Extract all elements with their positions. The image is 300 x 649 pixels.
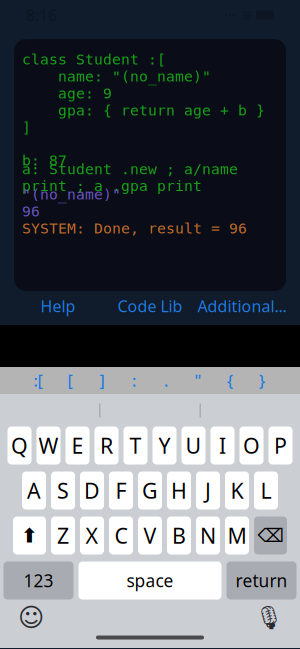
staticText: Q [11,431,28,460]
staticText: ⬆ [21,524,38,547]
button[interactable]: Additional... [196,292,288,320]
staticText: G [142,476,158,505]
staticText: ⌫ [257,525,283,546]
button[interactable]: Code Lib [104,292,196,320]
button[interactable]: O [239,426,263,464]
staticText: [ [67,370,72,391]
staticText: B [172,521,186,550]
button[interactable]: space [78,561,221,599]
staticText: R [100,431,113,460]
button[interactable]: H [167,471,191,509]
button[interactable]: { [214,367,246,393]
staticText: 8:16 [26,4,57,26]
staticText: N [200,521,216,550]
button[interactable]: :[ [22,367,54,393]
button[interactable]: A [22,471,46,509]
button[interactable]: R [94,426,118,464]
button[interactable]: N [196,516,220,554]
button[interactable]: 123 [3,561,73,599]
staticText: } [259,370,265,391]
button[interactable]: G [138,471,162,509]
button[interactable]: U [181,426,205,464]
staticText: b: 87 [22,152,67,169]
button[interactable]: M [225,516,249,554]
staticText: :[ [33,370,42,391]
button[interactable]: [ [54,367,86,393]
staticText: W [38,431,58,460]
button[interactable]: K [225,471,249,509]
button[interactable]: V [138,516,162,554]
button[interactable]: P [268,426,292,464]
staticText: Z [57,521,69,550]
button[interactable]: T [123,426,147,464]
staticText: age: 9 [22,85,112,102]
staticText: C [114,521,127,550]
staticText: Y [158,431,170,460]
staticText: P [274,431,287,460]
button[interactable]: X [80,516,104,554]
staticText: K [230,476,243,505]
staticText: ] [99,370,104,391]
staticText: 96 [22,203,40,220]
staticText: H [171,476,187,505]
button[interactable]: C [109,516,133,554]
staticText: X [85,521,98,550]
staticText: U [185,431,201,460]
staticText: M [227,521,246,550]
staticText: return [235,569,287,592]
staticText: E [71,431,83,460]
staticText: . [164,370,168,391]
button[interactable]: S [51,471,75,509]
button[interactable]: B [167,516,191,554]
button[interactable]: I [210,426,234,464]
staticText: O [243,431,260,460]
staticText: A [27,476,41,505]
staticText: D [84,476,100,505]
button[interactable]: ] [86,367,118,393]
button[interactable]: F [109,471,133,509]
staticText: name: "(no_name)" [22,68,211,85]
staticText: { [227,370,233,391]
staticText: F [115,476,126,505]
staticText: space [126,569,173,592]
button[interactable]: Shift [13,516,46,554]
button[interactable]: Emoji [14,600,48,634]
button[interactable]: Z [51,516,75,554]
staticText: J [205,476,211,505]
staticText: T [129,431,141,460]
staticText: "(no_name)" [22,186,121,203]
staticText: I [219,431,226,460]
staticText: V [143,521,156,550]
button[interactable]: Y [152,426,176,464]
button[interactable]: . [150,367,182,393]
staticText: ☺ [18,603,44,632]
staticText: L [260,476,271,505]
staticText: Code Lib [117,295,182,317]
button[interactable]: Delete [254,516,287,554]
button[interactable]: L [254,471,278,509]
button[interactable]: " [182,367,214,393]
button[interactable]: D [80,471,104,509]
staticText: : [132,370,136,391]
button[interactable]: E [65,426,89,464]
staticText: a: Student .new ; a/name print ; a .gpa … [22,161,238,194]
button[interactable]: W [36,426,60,464]
staticText: ] [22,119,31,136]
button[interactable]: Help [12,292,104,320]
staticText: ≋ [240,7,252,23]
staticText: 123 [23,569,53,592]
staticText: class Student :[ [22,51,166,68]
button[interactable]: Q [7,426,31,464]
staticText: gpa: { return age + b } [22,102,265,119]
staticText: Additional... [197,295,286,317]
staticText: S [57,476,69,505]
staticText: 🎙 [254,605,283,630]
staticText: Help [40,295,75,317]
button[interactable]: } [246,367,278,393]
staticText: " [194,370,201,391]
button[interactable]: return [226,561,296,599]
button[interactable]: Dictation [252,600,286,634]
button[interactable]: J [196,471,220,509]
button[interactable]: : [118,367,150,393]
